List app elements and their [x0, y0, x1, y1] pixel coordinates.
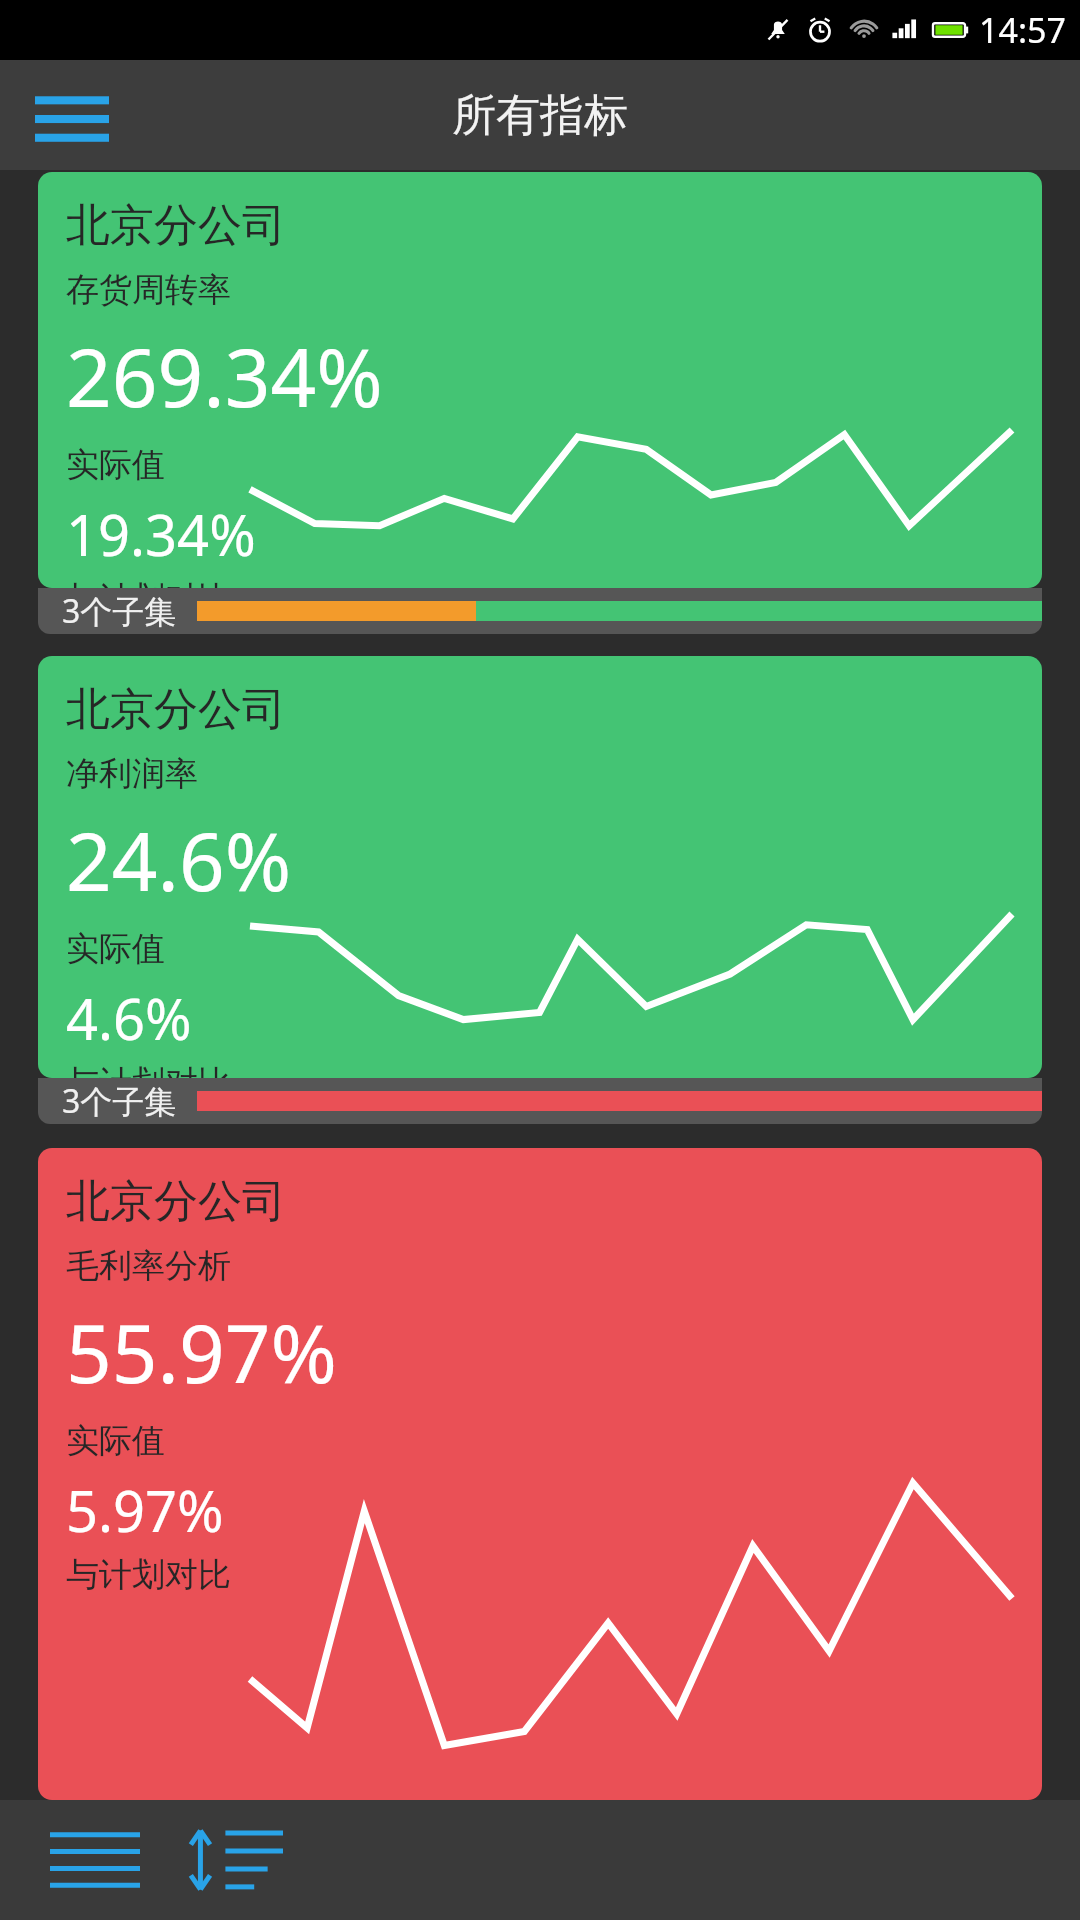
staticText: 3个子集 — [62, 589, 177, 633]
button[interactable]: 北京分公司 — [38, 1148, 1042, 1800]
staticText: 与计划对比 — [66, 1554, 231, 1596]
staticText: 4.6% — [66, 980, 192, 1056]
staticText: 269.34% — [66, 321, 383, 430]
staticText: 5.97% — [66, 1472, 224, 1548]
staticText: 24.6% — [66, 805, 292, 914]
staticText: 所有指标 — [452, 88, 628, 143]
staticText: 存货周转率 — [66, 269, 231, 311]
staticText: 北京分公司 — [66, 1174, 286, 1229]
staticText: 3个子集 — [62, 1079, 177, 1123]
button[interactable]: 3个子集 — [38, 1078, 1042, 1124]
staticText: 55.97% — [66, 1297, 337, 1406]
staticText: 与计划对比 — [66, 578, 231, 588]
staticText: 实际值 — [66, 928, 165, 970]
button[interactable]: 北京分公司 — [38, 656, 1042, 1078]
staticText: 实际值 — [66, 444, 165, 486]
button[interactable]: 北京分公司 — [38, 172, 1042, 588]
staticText: 北京分公司 — [66, 682, 286, 737]
button[interactable]: List view — [30, 1805, 160, 1915]
staticText: 北京分公司 — [66, 198, 286, 253]
button[interactable]: Menu — [24, 75, 120, 155]
staticText: 14:57 — [979, 7, 1066, 53]
staticText: 净利润率 — [66, 753, 198, 795]
staticText: 实际值 — [66, 1420, 165, 1462]
staticText: 19.34% — [66, 496, 256, 572]
staticText: 与计划对比 — [66, 1062, 231, 1078]
button[interactable]: 3个子集 — [38, 588, 1042, 634]
staticText: 毛利率分析 — [66, 1245, 231, 1287]
button[interactable]: Sort — [170, 1805, 300, 1915]
